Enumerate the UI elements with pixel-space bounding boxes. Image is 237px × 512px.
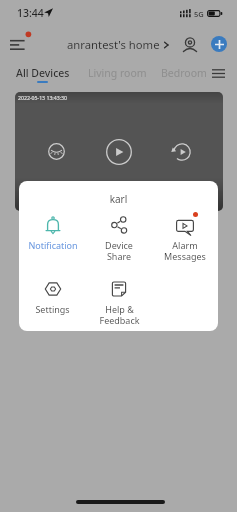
button[interactable]: Settings bbox=[19, 279, 86, 315]
staticText: karl bbox=[19, 192, 218, 206]
button[interactable]: Alarm Messages bbox=[152, 215, 218, 263]
button[interactable]: Device Share bbox=[86, 215, 152, 263]
staticText: Settings bbox=[35, 303, 70, 315]
button[interactable]: All Devices bbox=[16, 66, 70, 80]
button[interactable]: Play bbox=[106, 139, 132, 165]
button[interactable]: Notification bbox=[19, 215, 86, 251]
staticText: Help & Feedback bbox=[99, 303, 140, 327]
button[interactable]: Help & Feedback bbox=[86, 279, 152, 327]
button[interactable]: Bedroom bbox=[161, 66, 207, 80]
staticText: anrantest's home bbox=[67, 37, 160, 52]
staticText: Bedroom bbox=[161, 66, 207, 80]
button[interactable]: anrantest's home bbox=[67, 37, 169, 52]
button[interactable]: Add device bbox=[211, 36, 227, 52]
staticText: 2022-05-13 13:43:30 bbox=[18, 94, 68, 101]
button[interactable]: Hide video bbox=[48, 143, 65, 160]
button[interactable]: Playback bbox=[173, 143, 191, 161]
button[interactable]: Living room bbox=[88, 66, 147, 80]
staticText: 13:44 bbox=[17, 6, 44, 20]
staticText: 5G bbox=[194, 9, 204, 19]
staticText: Living room bbox=[88, 66, 147, 80]
button[interactable]: All rooms bbox=[208, 63, 228, 83]
staticText: All Devices bbox=[16, 66, 70, 80]
button[interactable]: Camera bbox=[179, 33, 201, 55]
staticText: Alarm Messages bbox=[164, 239, 206, 263]
button[interactable]: Menu bbox=[6, 30, 34, 58]
staticText: Device Share bbox=[105, 239, 133, 263]
staticText: Notification bbox=[28, 239, 78, 251]
